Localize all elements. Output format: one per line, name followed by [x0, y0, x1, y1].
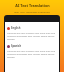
- button[interactable]: English: [7, 26, 57, 41]
- staticText: Spanish: [11, 44, 22, 48]
- staticText: Translate any text instantly into more t…: [7, 32, 57, 41]
- staticText: AI Text Translation: [15, 3, 50, 8]
- staticText: Translate any text instantly into more t…: [7, 50, 57, 59]
- button[interactable]: Spanish: [7, 44, 57, 59]
- staticText: English: [11, 26, 21, 30]
- staticText: with 100+ languages supported: [14, 10, 50, 13]
